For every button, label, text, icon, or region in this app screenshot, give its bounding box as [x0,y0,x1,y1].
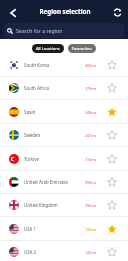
button[interactable]: United Kingdom [0,194,128,217]
staticText: 398ms [85,180,97,185]
button[interactable]: Back [2,2,24,24]
button[interactable]: Favourite [107,130,117,140]
button[interactable]: Search for a region [4,23,124,38]
button[interactable]: Favourite [107,224,117,234]
staticText: Sweden [24,132,85,138]
staticText: 296ms [85,203,97,208]
staticText: Türkiye [24,156,85,162]
button[interactable]: All Locations [32,44,64,53]
button[interactable]: Favourite [107,107,117,117]
staticText: South Africa [24,85,85,91]
staticText: Favourites [72,46,92,51]
staticText: Spain [24,109,85,115]
staticText: Region selection [24,7,106,15]
staticText: USA 2 [24,249,85,255]
staticText: 314ms [85,157,97,162]
button[interactable]: Favourite [107,200,117,210]
button[interactable]: Favourites [68,44,96,53]
staticText: United Arab Emirates [24,179,85,185]
staticText: 379ms [85,86,97,91]
staticText: 142ms [85,250,97,255]
button[interactable]: United Arab Emirates [0,171,128,194]
button[interactable]: Favourite [107,83,117,93]
button[interactable]: Refresh [106,1,128,23]
button[interactable]: South Africa [0,77,128,100]
button[interactable]: Sweden [0,124,128,147]
button[interactable]: Türkiye [0,148,128,171]
button[interactable]: USA 2 [0,241,128,261]
button[interactable]: USA 1 [0,218,128,241]
button[interactable]: Spain [0,101,128,124]
button[interactable]: Favourite [107,177,117,187]
staticText: Search for a region [16,27,63,34]
button[interactable]: Favourite [107,154,117,164]
staticText: All Locations [36,46,60,51]
button[interactable]: South Korea [0,54,128,77]
button[interactable]: Favourite [107,60,117,70]
staticText: South Korea [24,62,85,68]
staticText: 248ms [85,110,97,115]
staticText: USA 1 [24,226,85,232]
staticText: 241ms [85,133,97,138]
staticText: United Kingdom [24,202,85,208]
button[interactable]: Favourite [107,247,117,257]
staticText: 132ms [85,227,97,232]
staticText: 400ms [85,63,97,68]
